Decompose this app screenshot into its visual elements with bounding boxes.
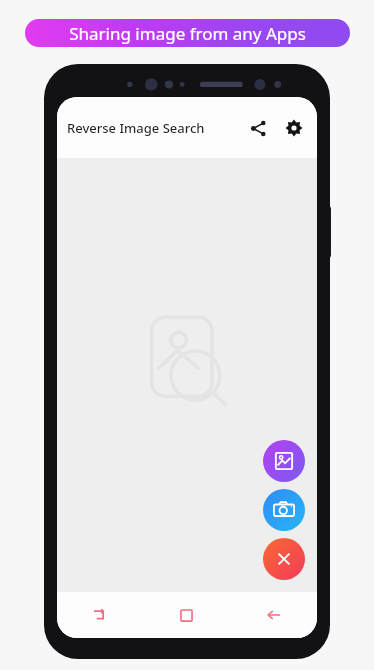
button[interactable]: Home xyxy=(143,592,230,638)
button[interactable]: Close xyxy=(263,538,305,580)
button[interactable]: Reverse Image Search xyxy=(67,119,205,137)
staticText: Sharing image from any Apps xyxy=(69,22,306,45)
button[interactable]: Sharing image from any Apps xyxy=(25,19,350,47)
button[interactable]: Settings xyxy=(279,113,309,143)
button[interactable]: Share xyxy=(243,113,273,143)
button[interactable]: Pick image xyxy=(263,440,305,482)
button[interactable]: Recents xyxy=(57,592,143,638)
button[interactable]: Back xyxy=(230,592,317,638)
button[interactable]: Camera xyxy=(263,489,305,531)
